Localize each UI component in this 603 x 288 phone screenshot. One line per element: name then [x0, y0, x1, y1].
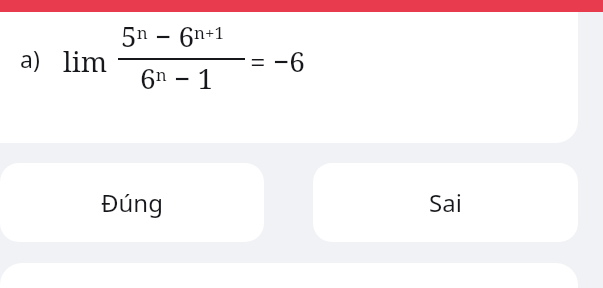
staticText: 6n − 1	[140, 59, 214, 97]
staticText: 5n − 6n+1	[121, 17, 225, 55]
staticText: a)	[20, 43, 40, 74]
button[interactable]: Sai	[313, 163, 578, 242]
button[interactable]: Đúng	[0, 163, 264, 242]
button[interactable]: a)	[0, 0, 578, 143]
staticText: lim	[63, 42, 108, 80]
staticText: Đúng	[101, 186, 163, 219]
staticText: = −6	[250, 42, 305, 80]
staticText: Sai	[429, 186, 462, 219]
